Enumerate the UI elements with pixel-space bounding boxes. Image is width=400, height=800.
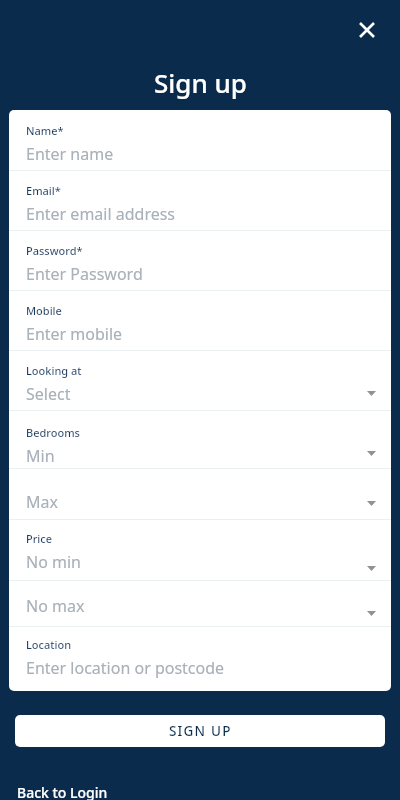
staticText: Enter Password — [26, 263, 143, 285]
button[interactable] — [9, 519, 391, 580]
staticText: Enter email address — [26, 203, 176, 225]
staticText: No min — [26, 551, 81, 573]
button[interactable] — [9, 626, 391, 691]
staticText: Min — [26, 445, 55, 467]
staticText: Email* — [26, 183, 61, 198]
staticText: Sign up — [154, 65, 247, 100]
button[interactable] — [9, 580, 391, 626]
staticText: Max — [26, 491, 58, 513]
staticText: Enter mobile — [26, 323, 123, 345]
button[interactable] — [352, 15, 382, 45]
button[interactable] — [9, 110, 391, 170]
staticText: Name* — [26, 123, 64, 138]
staticText: SIGN UP — [169, 722, 232, 740]
button[interactable] — [9, 350, 391, 410]
button[interactable] — [9, 230, 391, 290]
staticText: No max — [26, 595, 85, 617]
button[interactable] — [9, 468, 391, 519]
staticText: Looking at — [26, 363, 82, 378]
staticText: Price — [26, 531, 53, 546]
button[interactable]: SIGN UP — [15, 715, 385, 747]
button[interactable] — [9, 410, 391, 468]
button[interactable]: Back to Login — [17, 783, 108, 800]
button[interactable] — [9, 170, 391, 230]
button[interactable] — [9, 290, 391, 350]
staticText: Enter location or postcode — [26, 657, 225, 679]
staticText: Mobile — [26, 303, 62, 318]
staticText: Password* — [26, 243, 83, 258]
staticText: Enter name — [26, 143, 114, 165]
staticText: Location — [26, 637, 72, 652]
staticText: Bedrooms — [26, 425, 80, 440]
staticText: Select — [26, 383, 71, 405]
